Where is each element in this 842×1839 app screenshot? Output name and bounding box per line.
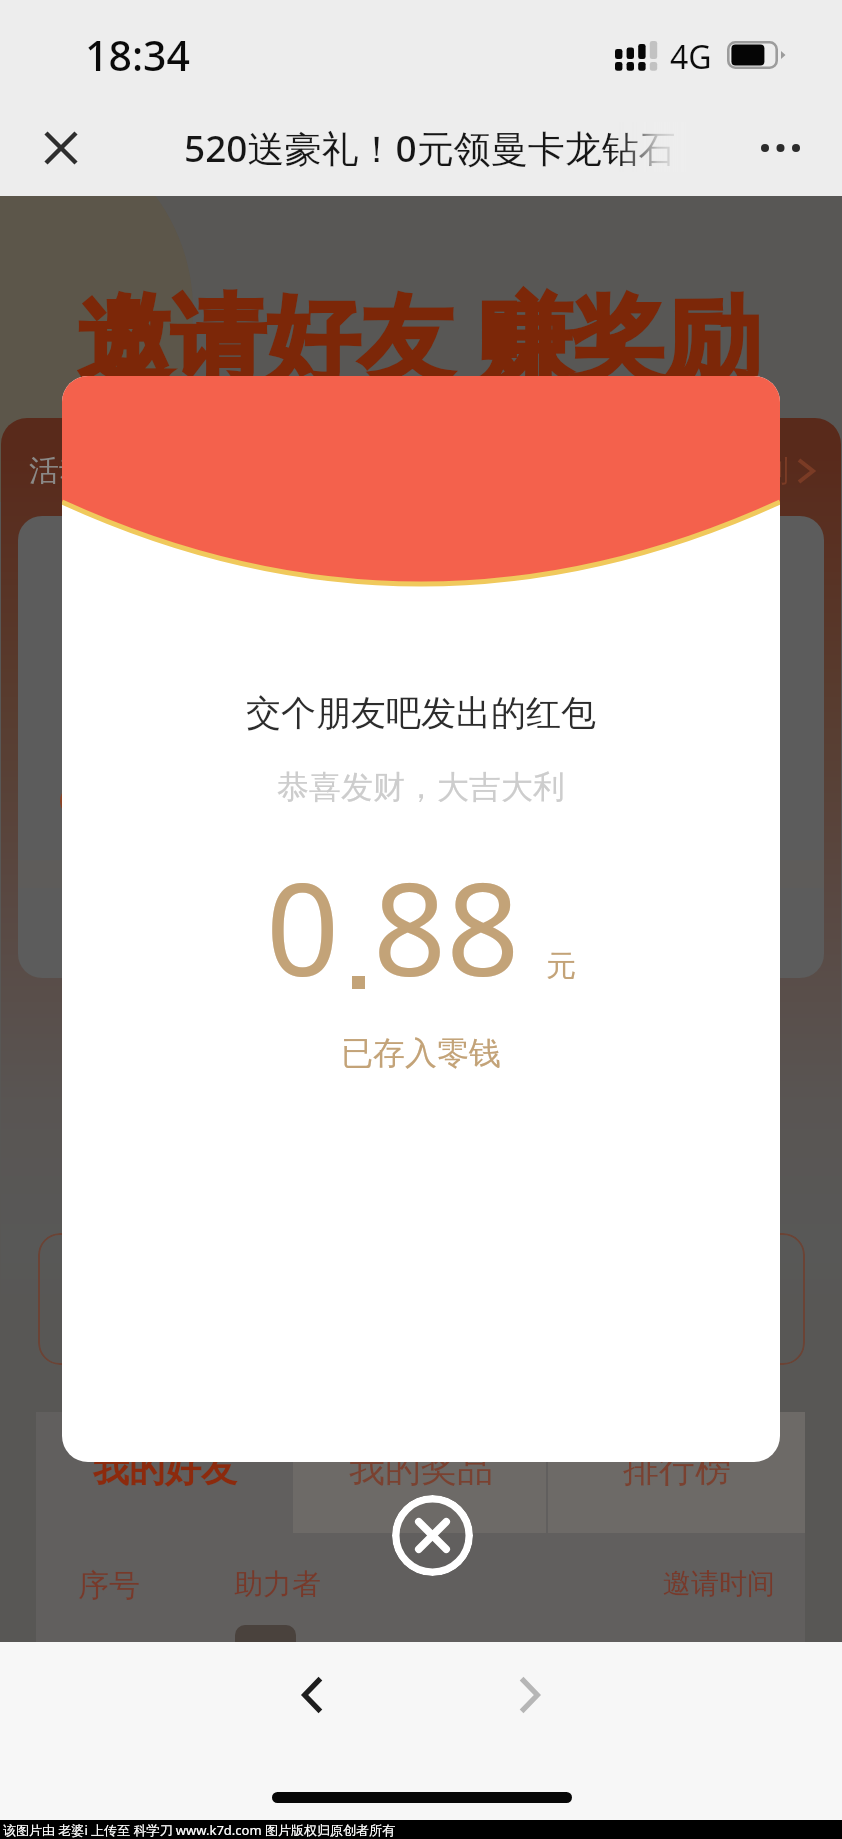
staticText: 活动说明 bbox=[29, 452, 149, 490]
staticText: 邀请时间 bbox=[663, 1566, 775, 1601]
staticText: 序号 bbox=[78, 1566, 140, 1605]
staticText: 助力者 bbox=[234, 1566, 321, 1603]
staticText: 我的好友 bbox=[93, 1446, 237, 1491]
staticText: 该图片由 老婆i 上传至 科学刀 www.k7d.com 图片版权归原创者所有 bbox=[3, 1821, 395, 1839]
staticText: 我的奖品 bbox=[349, 1446, 493, 1491]
staticText: 活动规则 bbox=[669, 452, 789, 490]
staticText: 88 bbox=[373, 839, 520, 1013]
staticText: 元 bbox=[546, 947, 576, 985]
button[interactable]: Close bbox=[31, 118, 91, 178]
button[interactable]: More options bbox=[752, 118, 812, 178]
staticText: 已存入零钱 bbox=[341, 1033, 501, 1073]
button[interactable]: 我的好友 bbox=[36, 1412, 293, 1533]
button[interactable]: Forward bbox=[494, 1659, 565, 1730]
button[interactable]: Back bbox=[277, 1659, 348, 1730]
staticText: 排行榜 bbox=[623, 1446, 731, 1491]
staticText: 交个朋友吧发出的红包 bbox=[246, 691, 596, 735]
staticText: 4G bbox=[670, 35, 712, 79]
staticText: 恭喜发财，大吉大利 bbox=[277, 767, 565, 807]
button[interactable]: 我的奖品 bbox=[293, 1412, 549, 1533]
button[interactable]: 排行榜 bbox=[549, 1412, 805, 1533]
button[interactable]: Close red packet bbox=[392, 1495, 473, 1576]
staticText: 18:34 bbox=[85, 27, 190, 83]
staticText: 0 bbox=[266, 839, 340, 1013]
staticText: 邀请好友 赚奖励 bbox=[77, 272, 760, 400]
staticText: 520送豪礼！0元领曼卡龙钻石 bbox=[184, 122, 676, 172]
